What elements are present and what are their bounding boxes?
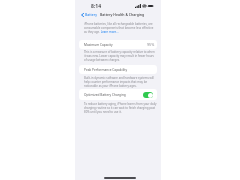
button[interactable]: Maximum Capacity (79, 40, 157, 49)
staticText: Battery (85, 12, 97, 17)
staticText: To reduce battery aging, iPhone learns f… (84, 102, 157, 114)
staticText: Built-in dynamic software and hardware s… (84, 76, 155, 88)
staticText: Optimized Battery Charging (84, 93, 126, 97)
staticText: This is a measure of battery capacity re… (84, 50, 155, 62)
button[interactable]: Optimized Battery Charging toggle (143, 92, 153, 98)
staticText: iPhone batteries, like all rechargeable … (84, 22, 154, 34)
button[interactable]: Optimized Battery Charging (79, 89, 157, 100)
staticText: Maximum Capacity (84, 43, 113, 47)
button[interactable]: Battery (75, 11, 99, 18)
staticText: Battery Health & Charging (100, 12, 145, 17)
button[interactable]: Peak Performance Capability (79, 65, 157, 74)
staticText: 95% (147, 42, 155, 47)
staticText: Peak Performance Capability (84, 68, 128, 72)
staticText: 8:14 (91, 3, 101, 10)
